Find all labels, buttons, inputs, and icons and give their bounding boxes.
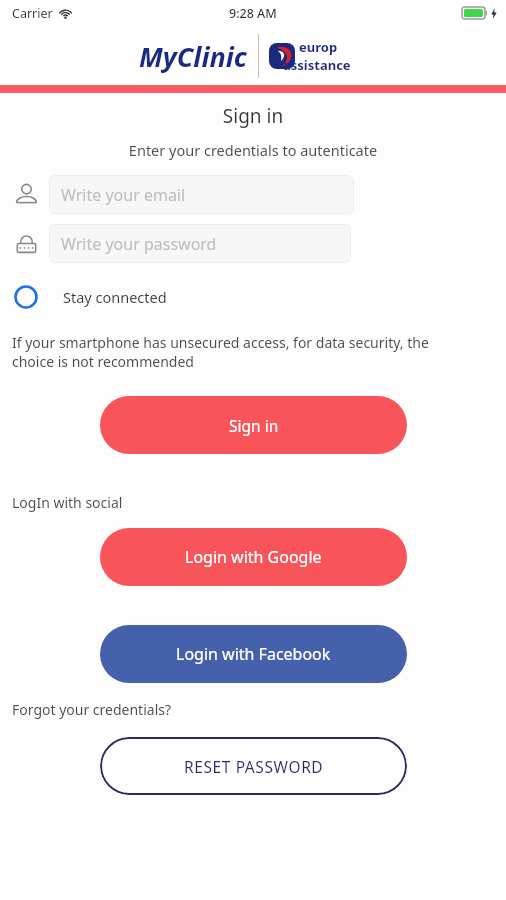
staticText: Stay connected — [63, 287, 167, 307]
button[interactable]: Write your email — [49, 175, 354, 214]
staticText: Forgot your credentials? — [12, 700, 172, 719]
staticText: Write your password — [61, 233, 217, 255]
staticText: europ — [299, 38, 338, 56]
staticText: assistance — [283, 56, 351, 74]
staticText: If your smartphone has unsecured access,… — [12, 333, 466, 371]
staticText: Carrier — [12, 5, 53, 22]
staticText: Login with Facebook — [176, 643, 331, 665]
staticText: Login with Google — [185, 546, 322, 568]
staticText: Write your email — [61, 184, 186, 206]
button[interactable]: Stay connected — [0, 280, 506, 314]
button[interactable]: Write your password — [49, 224, 351, 263]
staticText: Enter your credentials to autenticate — [0, 140, 506, 160]
button[interactable]: Login with Facebook — [100, 625, 407, 683]
staticText: Sign in — [229, 415, 279, 436]
button[interactable]: RESET PASSWORD — [100, 737, 407, 795]
staticText: Sign in — [0, 103, 506, 129]
button[interactable]: Login with Google — [100, 528, 407, 586]
staticText: LogIn with social — [12, 493, 123, 512]
staticText: 9:28 AM — [229, 5, 277, 22]
button[interactable]: Sign in — [100, 396, 407, 454]
staticText: RESET PASSWORD — [184, 756, 324, 777]
staticText: MyClinic — [139, 38, 247, 75]
